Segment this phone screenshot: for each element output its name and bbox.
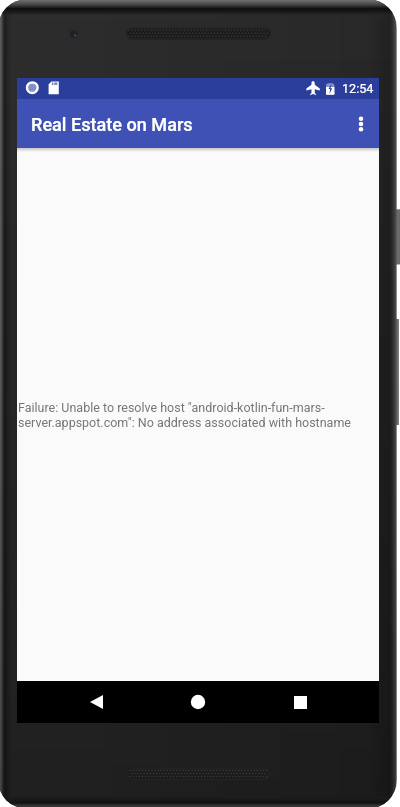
button[interactable]: Home [174,681,222,723]
staticText: Failure: Unable to resolve host "android… [18,400,379,430]
staticText: Real Estate on Mars [31,114,193,135]
button[interactable]: Back [72,681,120,723]
staticText: 12:54 [342,81,374,96]
button[interactable]: Recent apps [276,681,324,723]
button[interactable]: More options [340,103,382,145]
